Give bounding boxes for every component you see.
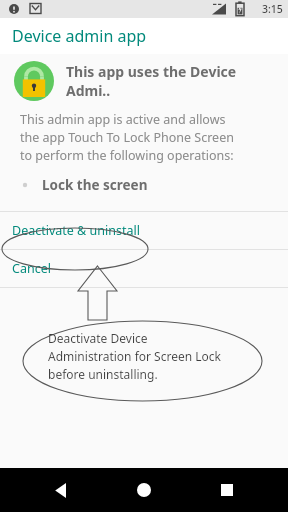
staticText: This admin app is active and allows the … <box>20 111 234 164</box>
staticText: Deactivate Device Administration for Scr… <box>48 330 221 383</box>
button[interactable]: Deactivate & uninstall <box>0 212 288 249</box>
staticText: This app uses the Device Admi.. <box>66 62 282 100</box>
staticText: Lock the screen <box>42 176 148 194</box>
button[interactable]: Cancel <box>0 250 288 287</box>
staticText: Cancel <box>12 260 51 277</box>
button[interactable]: Home <box>122 468 166 512</box>
staticText: Device admin app <box>12 25 147 47</box>
staticText: Deactivate & uninstall <box>12 222 140 239</box>
staticText: 3:15 <box>262 2 283 16</box>
button[interactable]: Recent apps <box>205 468 249 512</box>
button[interactable]: Back <box>39 468 83 512</box>
